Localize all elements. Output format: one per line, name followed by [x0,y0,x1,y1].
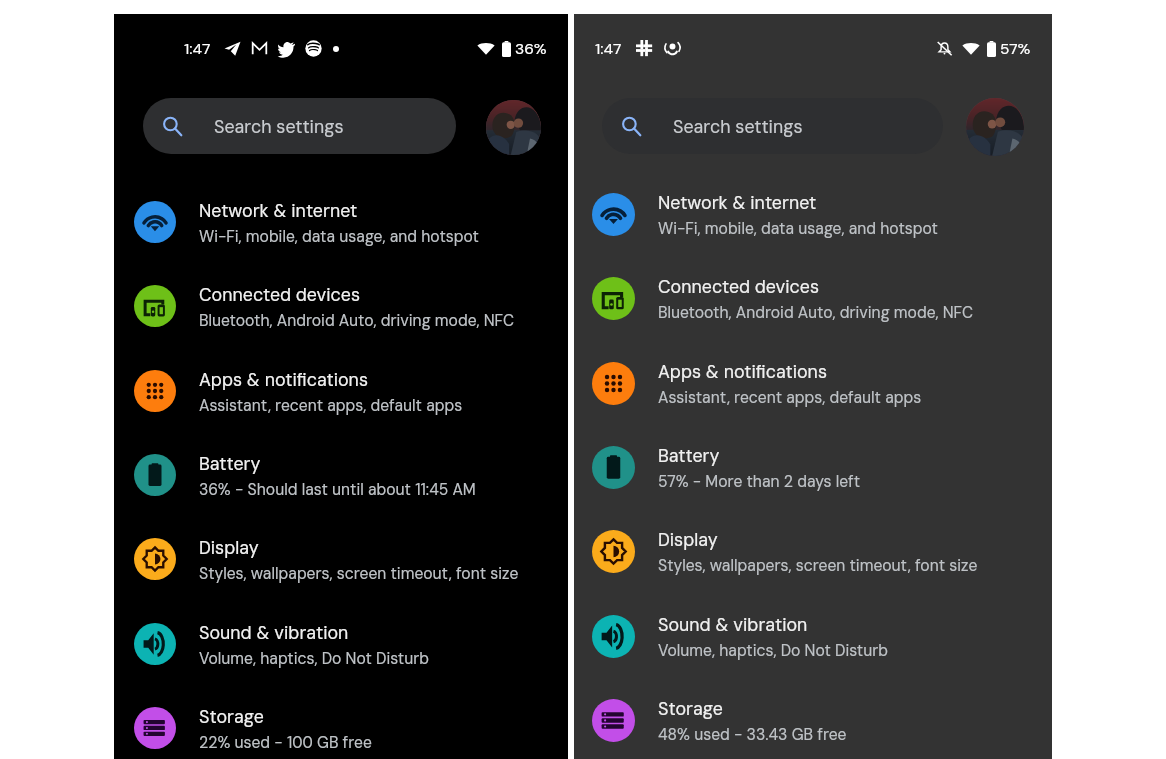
button[interactable]: Account [966,98,1024,156]
button[interactable]: Battery [574,425,1052,509]
staticText: Search settings [673,115,803,138]
staticText: Bluetooth, Android Auto, driving mode, N… [199,310,515,330]
staticText: Volume, haptics, Do Not Disturb [199,648,430,668]
staticText: 36% - Should last until about 11:45 AM [199,479,476,499]
staticText: 57% - More than 2 days left [658,471,861,491]
staticText: Sound & vibration [658,613,808,636]
staticText: 57% [1000,39,1031,59]
button[interactable]: Connected devices [114,264,568,348]
button[interactable]: Search settings [602,98,943,154]
staticText: Sound & vibration [199,621,349,644]
staticText: Styles, wallpapers, screen timeout, font… [658,555,978,575]
button[interactable]: Sound & vibration [574,594,1052,678]
staticText: Bluetooth, Android Auto, driving mode, N… [658,302,974,322]
staticText: Volume, haptics, Do Not Disturb [658,640,889,660]
staticText: Storage [658,697,723,720]
staticText: Search settings [214,115,344,138]
button[interactable]: Network & internet [574,172,1052,256]
staticText: 1:47 [184,39,211,59]
button[interactable]: Account [486,100,541,155]
staticText: Wi-Fi, mobile, data usage, and hotspot [199,226,479,246]
button[interactable]: Display [114,517,568,601]
staticText: Assistant, recent apps, default apps [199,395,463,415]
staticText: Connected devices [199,283,360,306]
staticText: Apps & notifications [199,368,368,391]
button[interactable]: Apps & notifications [574,341,1052,425]
staticText: 1:47 [595,39,622,59]
staticText: Battery [658,444,720,467]
button[interactable]: Apps & notifications [114,349,568,433]
staticText: 22% used - 100 GB free [199,732,372,752]
staticText: Storage [199,705,264,728]
staticText: 36% [515,39,547,59]
button[interactable]: Search settings [143,98,456,154]
staticText: Display [658,528,718,551]
button[interactable]: Storage [574,678,1052,759]
staticText: Network & internet [658,191,817,214]
staticText: Battery [199,452,261,475]
staticText: Styles, wallpapers, screen timeout, font… [199,563,519,583]
staticText: Wi-Fi, mobile, data usage, and hotspot [658,218,938,238]
staticText: Apps & notifications [658,360,827,383]
staticText: 48% used - 33.43 GB free [658,724,847,744]
button[interactable]: Display [574,509,1052,593]
staticText: Network & internet [199,199,358,222]
button[interactable]: Storage [114,686,568,759]
button[interactable]: Network & internet [114,180,568,264]
button[interactable]: Connected devices [574,256,1052,340]
staticText: Assistant, recent apps, default apps [658,387,922,407]
button[interactable]: Battery [114,433,568,517]
staticText: Display [199,536,259,559]
staticText: Connected devices [658,275,819,298]
button[interactable]: Sound & vibration [114,602,568,686]
